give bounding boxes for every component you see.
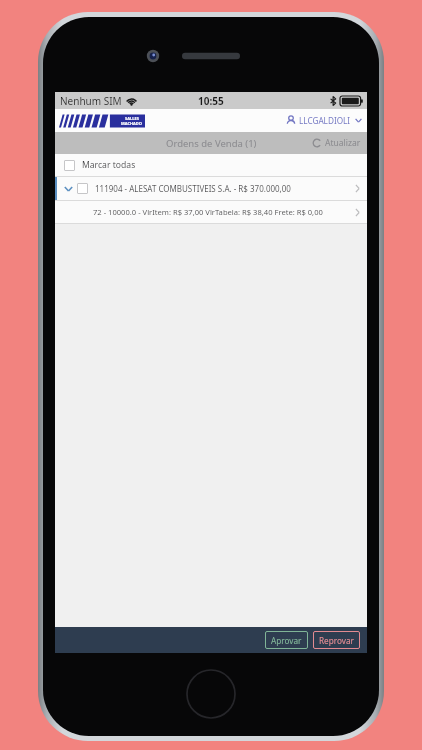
staticText: Marcar todas: [82, 159, 136, 171]
staticText: Aprovar: [271, 635, 302, 646]
staticText: 10:55: [198, 94, 224, 108]
button[interactable]: Select: [64, 160, 75, 171]
staticText: MACHADO: [121, 121, 142, 126]
button[interactable]: Select: [55, 154, 367, 176]
staticText: Nenhum SIM: [60, 94, 122, 108]
staticText: SALLES: [125, 116, 139, 121]
staticText: 111904 - ALESAT COMBUSTIVEIS S.A. - R$ 3…: [95, 183, 291, 194]
button[interactable]: Aprovar: [265, 631, 308, 649]
staticText: Ordens de Venda (1): [166, 137, 257, 150]
button[interactable]: LLCGALDIOLI: [286, 115, 362, 126]
button[interactable]: Salles Machado: [58, 114, 146, 128]
button[interactable]: Atualizar: [312, 137, 361, 149]
staticText: Reprovar: [319, 635, 354, 646]
button[interactable]: 72 - 10000.0 - VlrItem: R$ 37,00 VlrTabe…: [55, 201, 367, 223]
button[interactable]: Collapse: [55, 177, 367, 200]
staticText: 72 - 10000.0 - VlrItem: R$ 37,00 VlrTabe…: [93, 207, 323, 217]
button[interactable]: Collapse: [62, 182, 74, 196]
button[interactable]: Select: [77, 183, 88, 194]
button[interactable]: Reprovar: [313, 631, 360, 649]
staticText: Atualizar: [325, 137, 361, 149]
staticText: LLCGALDIOLI: [299, 115, 351, 126]
